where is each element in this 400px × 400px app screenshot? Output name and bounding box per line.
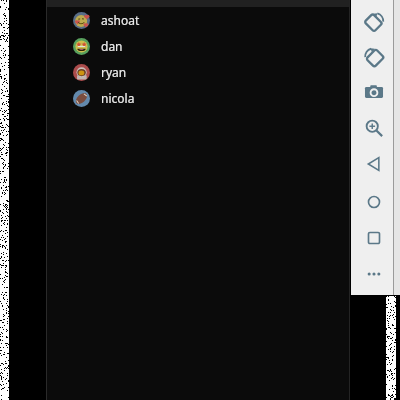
button[interactable]: Zoom in [363, 117, 385, 139]
button[interactable]: ryan [47, 59, 349, 85]
staticText: dan [101, 38, 123, 54]
staticText: nicola [101, 90, 135, 106]
button[interactable]: dan [47, 33, 349, 59]
staticText: ashoat [101, 12, 140, 28]
staticText: ryan [101, 64, 127, 80]
button[interactable]: Rotate right [363, 46, 385, 68]
button[interactable]: Rotate left [363, 11, 385, 33]
button[interactable]: Recents [363, 227, 385, 249]
button[interactable]: ashoat [47, 7, 349, 33]
button[interactable]: nicola [47, 85, 349, 111]
button[interactable]: Home [363, 191, 385, 213]
button[interactable]: Take screenshot [363, 81, 385, 103]
button[interactable]: More [363, 263, 385, 285]
button[interactable]: Back [363, 153, 385, 175]
